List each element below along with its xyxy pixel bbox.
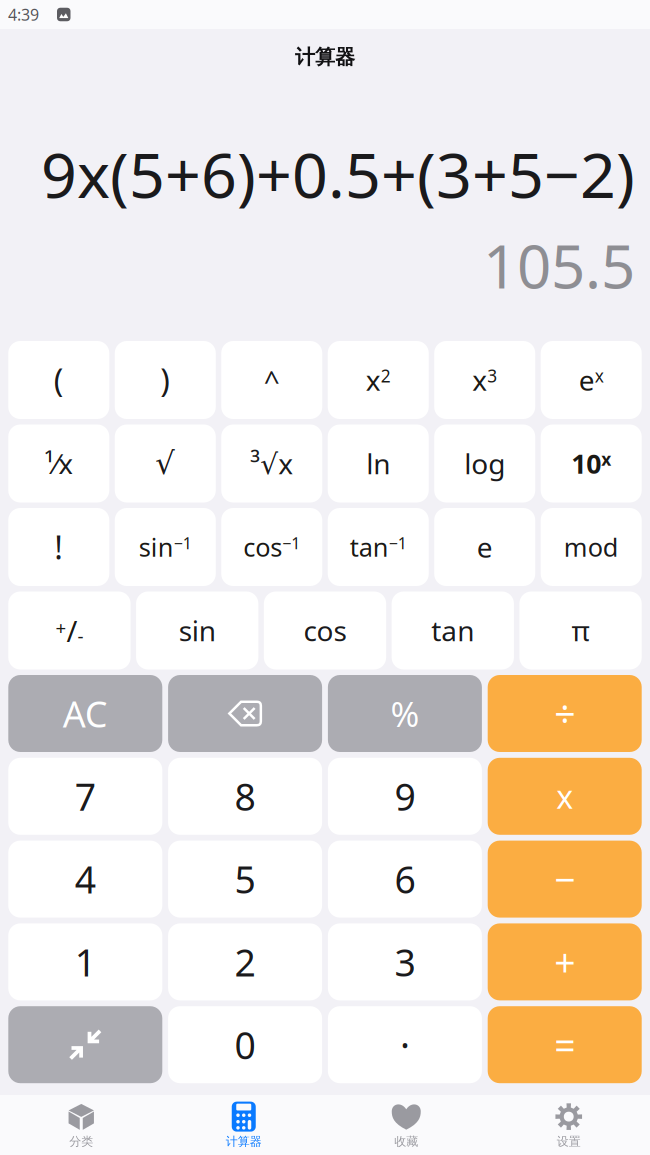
staticText: ( <box>54 359 64 401</box>
button[interactable]: ^ <box>221 341 322 419</box>
staticText: tan−1 <box>350 530 407 564</box>
button[interactable]: x2 <box>328 341 429 419</box>
button[interactable]: ¹⁄x <box>8 424 109 502</box>
button[interactable]: ! <box>8 508 109 586</box>
staticText: tan <box>431 612 474 649</box>
button[interactable]: +/- <box>8 591 131 669</box>
button[interactable]: 7 <box>8 758 162 835</box>
button[interactable]: · <box>328 1006 482 1083</box>
button[interactable]: x <box>488 758 642 835</box>
staticText: 4:39 <box>8 4 39 25</box>
button[interactable]: x3 <box>434 341 535 419</box>
staticText: x2 <box>366 361 391 399</box>
staticText: 5 <box>235 854 256 904</box>
staticText: 设置 <box>557 1134 581 1149</box>
staticText: 1 <box>75 937 96 987</box>
button[interactable]: ex <box>541 341 642 419</box>
staticText: ÷ <box>554 689 575 738</box>
button[interactable]: − <box>488 841 642 918</box>
staticText: ! <box>54 526 63 568</box>
staticText: 9x(5+6)+0.5+(3+5−2) <box>41 132 635 215</box>
staticText: sin−1 <box>139 530 192 564</box>
button[interactable]: log <box>434 424 535 502</box>
staticText: x <box>556 775 573 818</box>
staticText: 0 <box>235 1020 256 1069</box>
staticText: 3 <box>394 937 415 987</box>
button[interactable]: 10x <box>541 424 642 502</box>
button[interactable]: 1 <box>8 923 162 1000</box>
staticText: 105.5 <box>483 225 635 305</box>
staticText: ln <box>366 445 390 482</box>
button[interactable]: 3 <box>328 923 482 1000</box>
button[interactable]: mod <box>541 508 642 586</box>
staticText: x3 <box>472 361 497 399</box>
button[interactable]: π <box>519 591 642 669</box>
button[interactable]: = <box>488 1006 642 1083</box>
staticText: π <box>572 612 590 649</box>
staticText: ¹⁄x <box>44 445 73 482</box>
staticText: % <box>390 690 419 736</box>
staticText: 6 <box>394 854 415 904</box>
button[interactable]: Collapse keypad <box>8 1006 162 1083</box>
button[interactable]: ln <box>328 424 429 502</box>
staticText: mod <box>564 530 619 564</box>
button[interactable]: ÷ <box>488 675 642 752</box>
button[interactable]: 9 <box>328 758 482 835</box>
staticText: 收藏 <box>394 1134 418 1149</box>
button[interactable]: 设置 <box>487 1095 650 1155</box>
staticText: ex <box>579 361 604 399</box>
staticText: ^ <box>264 361 280 399</box>
staticText: 计算器 <box>226 1134 262 1149</box>
button[interactable]: cos <box>264 591 386 669</box>
staticText: 4 <box>75 854 96 904</box>
button[interactable]: 4 <box>8 841 162 918</box>
staticText: log <box>464 445 505 482</box>
staticText: AC <box>63 690 108 737</box>
button[interactable]: 分类 <box>0 1095 162 1155</box>
button[interactable]: ) <box>115 341 216 419</box>
staticText: cos <box>303 612 346 649</box>
staticText: cos−1 <box>243 530 300 564</box>
button[interactable]: sin−1 <box>115 508 216 586</box>
staticText: 2 <box>235 937 256 987</box>
button[interactable]: % <box>328 675 482 752</box>
button[interactable]: 计算器 <box>162 1095 325 1155</box>
button[interactable]: √ <box>115 424 216 502</box>
staticText: 分类 <box>69 1134 93 1149</box>
button[interactable]: 收藏 <box>325 1095 487 1155</box>
staticText: sin <box>179 612 216 649</box>
button[interactable]: 2 <box>168 923 322 1000</box>
staticText: 8 <box>235 771 256 821</box>
button[interactable]: Backspace <box>168 675 322 752</box>
button[interactable]: AC <box>8 675 162 752</box>
staticText: + <box>554 937 575 987</box>
button[interactable]: ³√x <box>221 424 322 502</box>
button[interactable]: sin <box>136 591 258 669</box>
staticText: +/- <box>55 611 83 650</box>
staticText: 10x <box>571 446 611 481</box>
staticText: 9 <box>394 771 415 821</box>
button[interactable]: tan <box>392 591 514 669</box>
staticText: √ <box>155 446 175 481</box>
staticText: ³√x <box>250 445 293 482</box>
staticText: 计算器 <box>295 45 355 69</box>
button[interactable]: tan−1 <box>328 508 429 586</box>
button[interactable]: 0 <box>168 1006 322 1083</box>
button[interactable]: 6 <box>328 841 482 918</box>
staticText: = <box>554 1020 575 1069</box>
staticText: 7 <box>75 771 96 821</box>
button[interactable]: cos−1 <box>221 508 322 586</box>
button[interactable]: + <box>488 923 642 1000</box>
staticText: · <box>400 1020 410 1069</box>
staticText: − <box>554 854 575 904</box>
button[interactable]: e <box>434 508 535 586</box>
button[interactable]: ( <box>8 341 109 419</box>
button[interactable]: 5 <box>168 841 322 918</box>
button[interactable]: 8 <box>168 758 322 835</box>
staticText: e <box>477 528 493 566</box>
staticText: ) <box>160 359 170 401</box>
